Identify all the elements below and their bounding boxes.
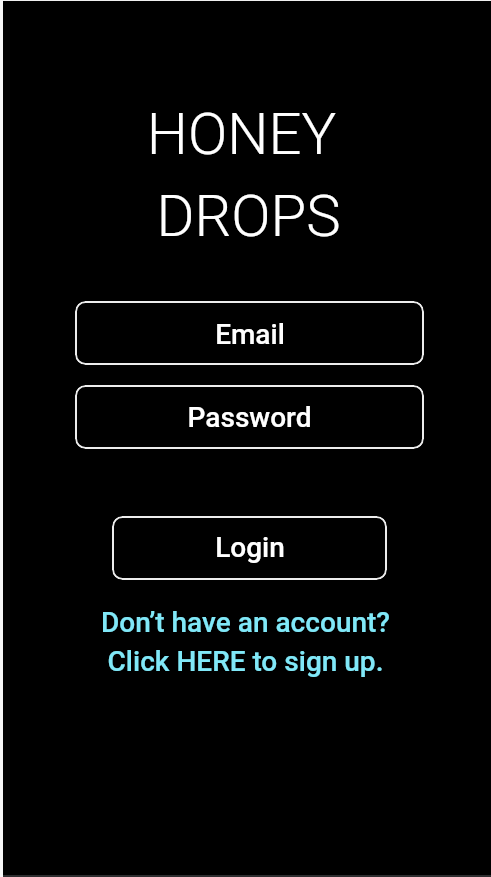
staticText: Password xyxy=(187,401,312,434)
button[interactable]: Password xyxy=(75,385,424,449)
staticText: Don’t have an account? Click HERE to sig… xyxy=(99,606,392,678)
button[interactable]: Email xyxy=(75,301,424,365)
staticText: Login xyxy=(215,531,285,564)
button[interactable]: Don’t have an account? Click HERE to sig… xyxy=(99,606,392,678)
staticText: HONEY xyxy=(0,100,487,168)
button[interactable]: Login xyxy=(112,516,387,580)
staticText: DROPS xyxy=(3,182,491,250)
staticText: Email xyxy=(215,318,285,351)
